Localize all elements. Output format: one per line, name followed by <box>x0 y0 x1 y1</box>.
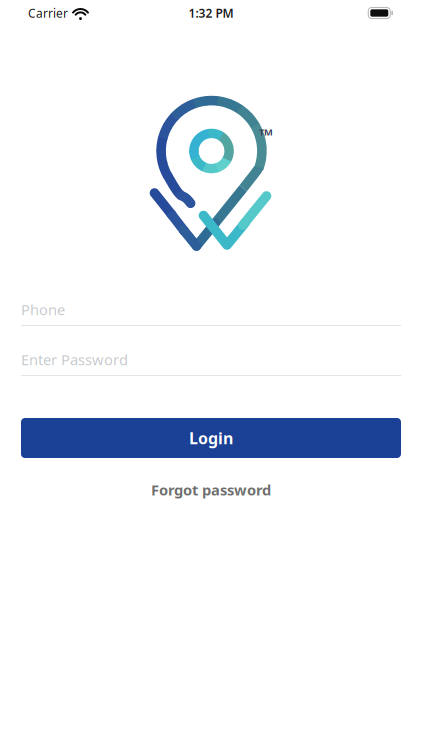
staticText: Phone <box>21 300 65 319</box>
staticText: Enter Password <box>21 350 128 369</box>
staticText: 1:32 PM <box>188 5 233 21</box>
staticText: Forgot password <box>151 480 271 499</box>
staticText: Carrier <box>28 5 68 21</box>
staticText: Login <box>189 427 233 449</box>
button[interactable]: Login <box>21 418 401 458</box>
staticText: TM <box>259 126 273 138</box>
button[interactable]: Forgot password <box>151 480 271 499</box>
